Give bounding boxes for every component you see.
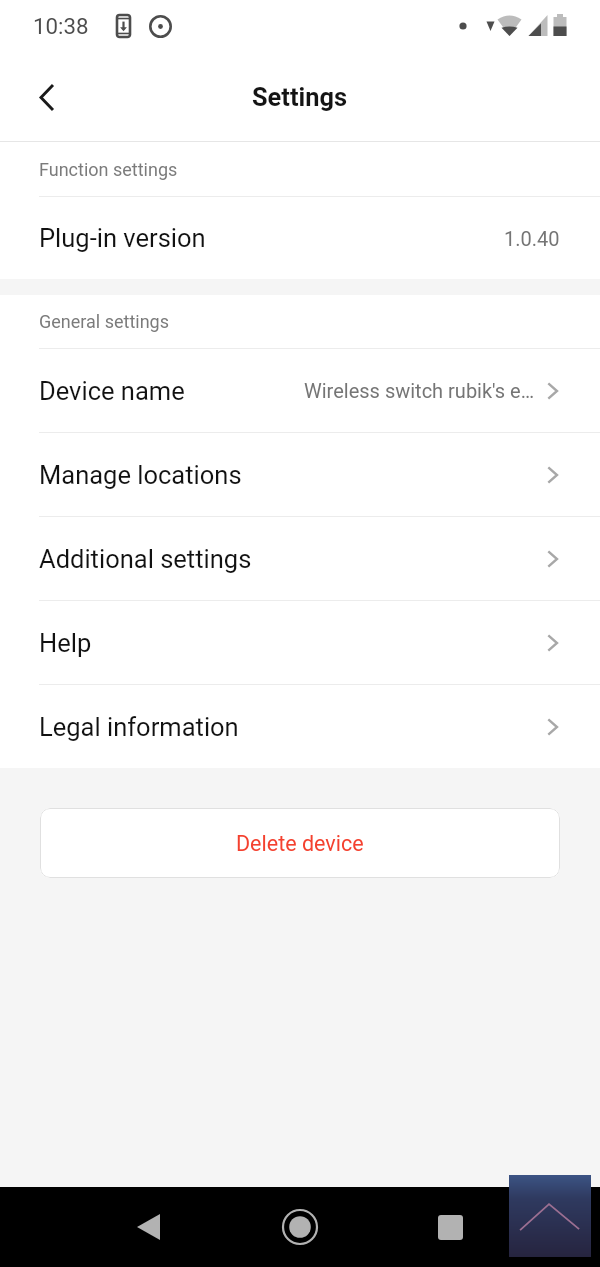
button[interactable]: Back [0,1187,296,1267]
button[interactable]: Back [15,65,79,129]
staticText: Device name [39,376,185,406]
staticText: 1.0.40 [504,227,560,250]
staticText: 10:38 [33,13,89,39]
button[interactable]: Home [240,1187,360,1267]
button[interactable]: Delete device [40,808,560,878]
button[interactable]: Additional settings [0,517,600,600]
staticText: Settings [252,82,348,112]
staticText: Help [39,628,92,658]
button[interactable]: Recent apps [300,1187,600,1267]
staticText: Additional settings [39,544,252,574]
button[interactable]: Help [0,601,600,684]
staticText: General settings [39,311,169,332]
button[interactable]: Legal information [0,685,600,768]
staticText: Function settings [39,159,178,180]
staticText: Wireless switch rubik's e… [304,379,535,402]
button[interactable]: Quick ball [509,1175,591,1257]
button[interactable]: Device name [0,349,600,432]
staticText: Plug-in version [39,223,206,253]
button[interactable]: Plug-in version [0,197,600,279]
staticText: Legal information [39,712,239,742]
button[interactable]: Manage locations [0,433,600,516]
staticText: Delete device [236,831,364,856]
staticText: Manage locations [39,460,242,490]
